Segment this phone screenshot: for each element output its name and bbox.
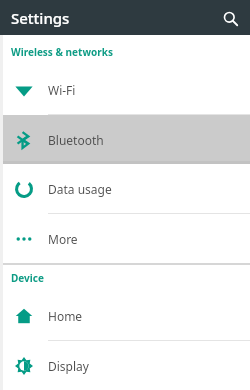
staticText: Bluetooth <box>48 132 104 148</box>
button[interactable]: Data usage <box>0 164 250 213</box>
staticText: Display <box>48 358 89 374</box>
staticText: Wi-Fi <box>48 82 76 98</box>
button[interactable]: Bluetooth <box>0 115 250 164</box>
button[interactable]: Search <box>217 5 243 31</box>
button[interactable]: Home <box>0 291 250 340</box>
button[interactable]: More <box>0 214 250 263</box>
staticText: Device <box>11 271 44 285</box>
button[interactable]: Wi-Fi <box>0 65 250 114</box>
staticText: Wireless & networks <box>11 45 113 59</box>
staticText: Settings <box>11 8 70 28</box>
staticText: Home <box>48 308 83 324</box>
staticText: More <box>48 231 78 247</box>
button[interactable]: Display <box>0 341 250 390</box>
staticText: Data usage <box>48 181 112 197</box>
